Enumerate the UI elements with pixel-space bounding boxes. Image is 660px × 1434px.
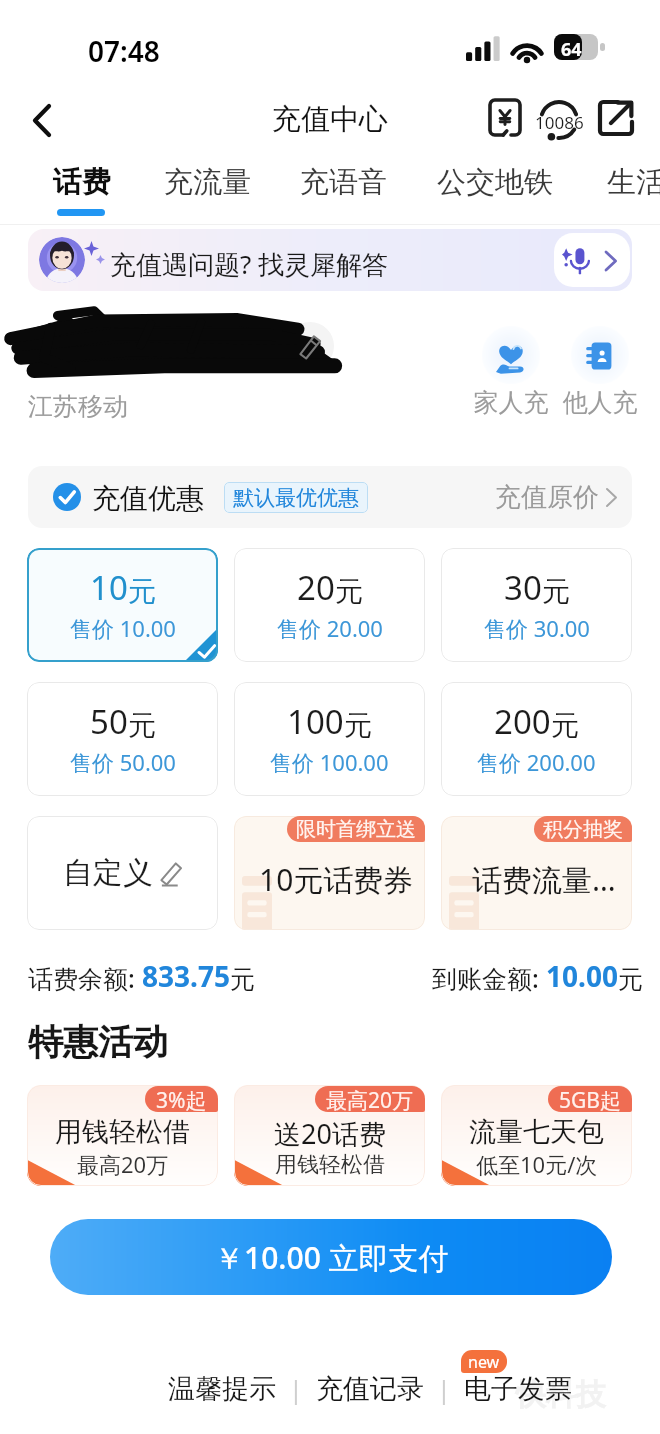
staticText: 限时首绑立送: [296, 817, 416, 842]
staticText: 售价 200.00: [477, 747, 596, 777]
staticText: 10: [90, 565, 128, 610]
button[interactable]: 充流量: [164, 158, 257, 222]
button[interactable]: 送20话费: [234, 1085, 425, 1186]
staticText: 特惠活动: [28, 1020, 168, 1064]
staticText: 3%起: [156, 1086, 207, 1112]
button[interactable]: 电子发票: [464, 1372, 572, 1406]
staticText: |: [276, 1372, 316, 1406]
staticText: 售价 20.00: [277, 613, 383, 643]
staticText: 公交地铁: [437, 164, 553, 201]
staticText: 低至10元/次: [476, 1149, 598, 1179]
staticText: 元: [344, 708, 372, 743]
button[interactable]: 100: [234, 682, 425, 796]
staticText: 流量七天包: [469, 1115, 604, 1149]
button[interactable]: 20: [234, 548, 425, 662]
staticText: 送20话费: [274, 1115, 386, 1152]
staticText: 积分抽奖: [543, 817, 623, 842]
button[interactable]: 温馨提示: [168, 1372, 276, 1406]
staticText: 售价 100.00: [270, 747, 389, 777]
staticText: 07:48: [88, 32, 160, 70]
staticText: 话费流量…: [472, 859, 616, 900]
staticText: 20: [297, 565, 335, 610]
staticText: ￥10.00 立即支付: [214, 1237, 449, 1278]
button[interactable]: 50: [27, 682, 218, 796]
staticText: new: [468, 1351, 500, 1373]
staticText: 生活缴费: [607, 164, 660, 201]
staticText: 到账金额:: [432, 961, 546, 995]
button[interactable]: ￥10.00 立即支付: [50, 1219, 612, 1295]
button[interactable]: Recharge for family: [463, 326, 559, 420]
staticText: 自定义: [63, 854, 153, 892]
staticText: 充语音: [300, 164, 387, 201]
staticText: 用钱轻松借: [275, 1151, 385, 1179]
button[interactable]: 用钱轻松借: [27, 1085, 218, 1186]
staticText: 默认最优优惠: [233, 485, 359, 511]
staticText: 元: [128, 574, 156, 609]
staticText: 话费: [53, 164, 111, 201]
staticText: 30: [504, 565, 542, 610]
staticText: 售价 30.00: [484, 613, 590, 643]
button[interactable]: 充值优惠: [28, 466, 632, 528]
staticText: 售价 10.00: [70, 613, 176, 643]
staticText: 元: [618, 964, 643, 995]
button[interactable]: Recharge for others: [552, 326, 648, 420]
staticText: 833.75: [142, 957, 230, 995]
staticText: 元: [335, 574, 363, 609]
button[interactable]: 公交地铁: [437, 158, 561, 222]
button[interactable]: 10: [27, 548, 218, 662]
button[interactable]: 10元话费券: [234, 816, 425, 930]
staticText: 最高20万: [77, 1149, 169, 1179]
staticText: 售价 50.00: [70, 747, 176, 777]
staticText: 10086: [535, 111, 584, 134]
button[interactable]: 30: [441, 548, 632, 662]
staticText: 200: [494, 699, 551, 744]
button[interactable]: Bill: [478, 91, 530, 143]
button[interactable]: 充值记录: [316, 1372, 424, 1406]
button[interactable]: 自定义: [27, 816, 218, 930]
staticText: 他人充: [552, 387, 648, 418]
staticText: 家人充: [463, 387, 559, 418]
staticText: 充流量: [164, 164, 251, 201]
staticText: 元: [551, 708, 579, 743]
staticText: 充值遇问题? 找灵犀解答: [110, 246, 389, 282]
staticText: 50: [90, 699, 128, 744]
staticText: 元: [128, 708, 156, 743]
button[interactable]: 200: [441, 682, 632, 796]
button[interactable]: Back: [14, 92, 70, 148]
button[interactable]: 话费: [53, 158, 115, 222]
staticText: 用钱轻松借: [55, 1115, 190, 1149]
staticText: 元: [230, 964, 255, 995]
staticText: |: [424, 1372, 464, 1406]
button[interactable]: Edit phone number: [286, 322, 334, 370]
staticText: 话费余额:: [28, 961, 142, 995]
button[interactable]: 话费流量…: [441, 816, 632, 930]
staticText: 5GB起: [559, 1086, 621, 1112]
button[interactable]: 生活缴费: [607, 158, 660, 222]
staticText: 元: [542, 574, 570, 609]
staticText: 充值优惠: [92, 481, 204, 516]
button[interactable]: 流量七天包: [441, 1085, 632, 1186]
staticText: 64: [561, 37, 582, 62]
staticText: 最高20万: [326, 1086, 414, 1112]
staticText: 快科技: [516, 1376, 606, 1414]
staticText: 充值中心: [272, 101, 388, 138]
staticText: 充值原价: [495, 481, 599, 514]
staticText: 10.00: [546, 957, 618, 995]
button[interactable]: Voice assistant: [554, 233, 630, 287]
staticText: 江苏移动: [28, 391, 128, 422]
staticText: 10元话费券: [259, 859, 414, 900]
button[interactable]: 充值遇问题? 找灵犀解答: [28, 229, 632, 291]
button[interactable]: 充语音: [300, 158, 393, 222]
button[interactable]: Share: [589, 91, 641, 143]
button[interactable]: 10086 customer service: [532, 91, 588, 147]
staticText: 100: [287, 699, 344, 744]
